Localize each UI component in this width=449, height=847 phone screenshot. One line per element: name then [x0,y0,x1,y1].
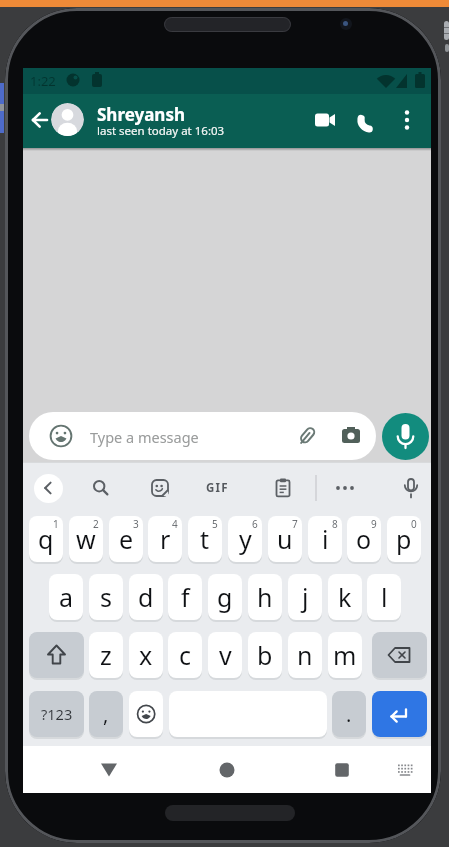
button[interactable]: m [328,632,362,678]
staticText: Type a message [90,427,199,447]
staticText: . [346,701,352,728]
staticText: u [277,522,293,556]
button[interactable] [397,106,417,134]
button[interactable]: l [367,574,401,620]
button[interactable]: k [328,574,362,620]
button[interactable]: u [268,516,302,562]
staticText: n [297,638,313,672]
staticText: 1:22 [30,72,56,90]
staticText: l [381,580,388,614]
staticText: 3 [133,517,139,531]
staticText: h [257,580,273,614]
staticText: d [138,580,154,614]
staticText: 7 [292,517,298,531]
staticText: last seen today at 16:03 [97,123,225,139]
button[interactable]: x [129,632,163,678]
staticText: f [181,580,190,614]
button[interactable]: b [248,632,282,678]
staticText: 0 [411,517,417,531]
staticText: t [200,522,210,556]
button[interactable] [51,103,84,136]
button[interactable] [28,108,52,132]
button[interactable]: s [89,574,123,620]
button[interactable]: q [29,516,63,562]
staticText: 8 [332,517,338,531]
button[interactable] [34,474,63,503]
button[interactable]: p [387,516,421,562]
button[interactable]: y [228,516,262,562]
staticText: g [217,580,233,614]
button[interactable]: f [168,574,202,620]
staticText: 4 [172,517,178,531]
staticText: x [139,638,153,672]
button[interactable]: c [168,632,202,678]
button[interactable]: , [89,691,123,737]
button[interactable]: d [129,574,163,620]
button[interactable] [372,632,427,678]
staticText: c [179,638,192,672]
staticText: 5 [212,517,218,531]
button[interactable]: GIF [201,480,233,496]
button[interactable]: j [288,574,322,620]
staticText: y [239,522,252,556]
staticText: b [257,638,273,672]
staticText: Shreyansh [97,103,186,126]
staticText: a [59,580,74,614]
button[interactable] [393,758,417,782]
button[interactable]: t [188,516,222,562]
staticText: s [100,580,112,614]
staticText: k [338,580,352,614]
button[interactable] [89,476,113,500]
button[interactable]: r [148,516,182,562]
button[interactable] [148,476,172,500]
staticText: 9 [371,517,377,531]
staticText: q [38,522,54,556]
button[interactable]: . [332,691,366,737]
staticText: z [100,638,112,672]
button[interactable] [129,691,163,737]
button[interactable]: a [49,574,83,620]
button[interactable] [29,632,84,678]
staticText: w [76,522,96,556]
staticText: r [160,522,171,556]
staticText: 6 [252,517,258,531]
staticText: GIF [206,480,229,496]
staticText: o [356,522,372,556]
staticText: , [103,701,109,728]
staticText: 1 [53,517,59,531]
staticText: 2 [93,517,99,531]
staticText: m [333,638,357,672]
button[interactable] [215,758,239,782]
button[interactable]: v [208,632,242,678]
staticText: e [119,522,134,556]
button[interactable] [271,476,295,500]
button[interactable] [399,476,423,500]
button[interactable]: z [89,632,123,678]
button[interactable] [372,691,427,737]
button[interactable]: g [208,574,242,620]
button[interactable] [311,106,339,134]
button[interactable]: h [248,574,282,620]
button[interactable]: o [347,516,381,562]
staticText: v [219,638,232,672]
staticText: j [302,580,309,614]
staticText: ?123 [41,704,73,724]
button[interactable] [333,476,357,500]
button[interactable] [382,413,429,460]
button[interactable]: i [308,516,342,562]
button[interactable] [356,106,384,134]
button[interactable] [97,758,121,782]
button[interactable] [330,758,354,782]
button[interactable]: e [109,516,143,562]
button[interactable]: ?123 [29,691,84,737]
staticText: p [396,522,412,556]
button[interactable]: n [288,632,322,678]
button[interactable]: Type a message [29,412,376,460]
button[interactable]: w [69,516,103,562]
staticText: i [322,522,329,556]
